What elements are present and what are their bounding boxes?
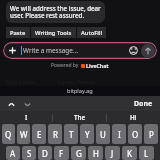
button[interactable]: I [112,124,126,144]
staticText: T [69,129,74,140]
button[interactable]: P [144,124,158,144]
staticText: Online Store [6,79,36,86]
button[interactable]: H [88,146,103,160]
button[interactable]: F [54,146,69,160]
button[interactable]: Writing Tools [31,27,76,38]
staticText: Y [85,129,90,140]
staticText: A [10,148,16,159]
staticText: D [42,148,48,159]
staticText: Writing Tools [35,29,72,37]
staticText: We will address the issue, dear user. Pl… [10,4,101,20]
button[interactable]: J [105,146,120,160]
button[interactable]: The [53,111,106,124]
staticText: R [53,129,58,140]
staticText: Hi [130,113,137,122]
staticText: K [127,148,132,159]
staticText: Q [5,129,12,140]
button[interactable]: AutoFill [77,27,106,38]
staticText: Paste [10,29,26,37]
staticText: Done [134,99,153,109]
button[interactable]: S [22,146,36,160]
button[interactable]: Q [2,124,15,144]
button[interactable]: K [122,146,137,160]
staticText: H [93,148,99,159]
staticText: Current Promos [58,79,96,86]
button[interactable]: Hi [107,111,160,124]
button[interactable]: D [38,146,52,160]
staticText: O [132,129,139,140]
button[interactable]: Done [129,97,158,111]
staticText: I [25,113,28,122]
button[interactable]: We will address the issue, dear user. Pl… [6,1,105,23]
button[interactable]: Add attachment [6,44,19,57]
staticText: F [59,148,64,159]
button[interactable]: G [71,146,86,160]
staticText: P [149,129,154,140]
button[interactable]: Previous field [4,97,18,111]
button[interactable]: Write a message... [23,42,127,59]
button[interactable]: O [128,124,142,144]
button[interactable]: A [6,146,20,160]
staticText: E [37,129,42,140]
staticText: U [100,129,106,140]
staticText: Write a message... [23,46,78,55]
button[interactable]: T [64,124,78,144]
staticText: The [74,113,86,122]
button[interactable]: Send [141,44,155,58]
button[interactable]: bitplay.ag [0,86,160,96]
staticText: Powered by [51,62,79,69]
button[interactable]: Y [80,124,94,144]
staticText: G [76,148,82,159]
staticText: I [118,129,121,140]
staticText: S [27,148,32,159]
button[interactable]: Next field [20,97,34,111]
button[interactable]: E [32,124,46,144]
button[interactable]: Paste [6,27,30,38]
staticText: J [111,148,114,159]
button[interactable]: Emoji [127,44,140,57]
staticText: W [20,129,28,140]
button[interactable]: W [17,124,30,144]
button[interactable]: I [0,111,52,124]
staticText: AutoFill [81,29,102,37]
button[interactable]: L [139,146,154,160]
staticText: LiveChat [86,62,109,69]
staticText: bitplay.ag [67,87,93,95]
button[interactable]: R [48,124,62,144]
button[interactable]: U [96,124,110,144]
staticText: L [144,148,149,159]
